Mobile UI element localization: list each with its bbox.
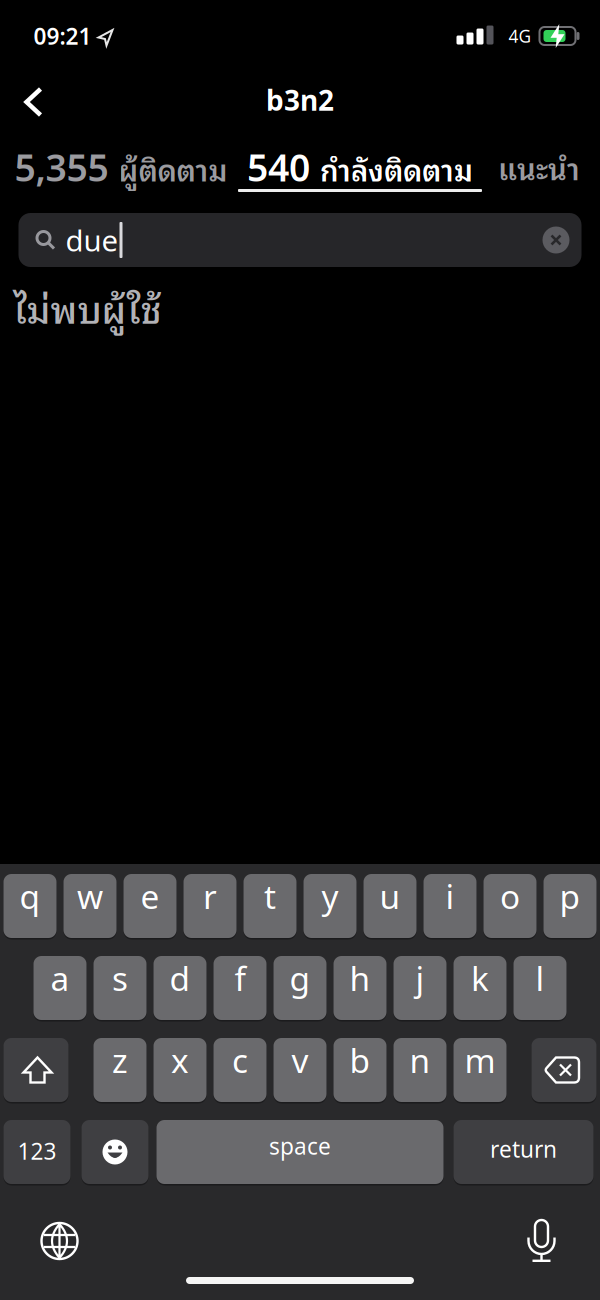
staticText: 09:21 (33, 21, 91, 51)
button[interactable]: Shift (3, 1038, 68, 1102)
button[interactable]: q (3, 874, 56, 938)
button[interactable]: Emoji (81, 1120, 148, 1184)
button[interactable]: e (123, 874, 176, 938)
button[interactable]: 5,355 ผู้ติดตาม (0, 138, 242, 192)
staticText: space (269, 1131, 331, 1161)
button[interactable]: c (213, 1038, 266, 1102)
button[interactable]: s (93, 956, 146, 1020)
button[interactable]: g (273, 956, 326, 1020)
button[interactable]: o (483, 874, 536, 938)
button[interactable]: แนะนำ (478, 138, 600, 192)
button[interactable]: Back (0, 83, 63, 113)
staticText: r (203, 874, 217, 918)
button[interactable]: r (183, 874, 236, 938)
button[interactable]: j (393, 956, 446, 1020)
button[interactable]: space (156, 1120, 443, 1184)
staticText: l (535, 956, 544, 1000)
staticText: i (445, 874, 454, 918)
button[interactable]: a (33, 956, 86, 1020)
staticText: f (234, 956, 245, 1000)
button[interactable]: x (153, 1038, 206, 1102)
staticText: 123 (17, 1136, 56, 1166)
staticText: 4G (508, 24, 531, 47)
button[interactable]: w (63, 874, 116, 938)
button[interactable]: p (543, 874, 596, 938)
staticText: return (490, 1134, 557, 1164)
staticText: h (349, 956, 370, 1000)
staticText: z (112, 1038, 128, 1082)
button[interactable]: h (333, 956, 386, 1020)
button[interactable]: v (273, 1038, 326, 1102)
button[interactable]: Dictate (527, 1220, 600, 1262)
button[interactable]: b (333, 1038, 386, 1102)
staticText: d (169, 956, 190, 1000)
staticText: o (500, 874, 520, 918)
button[interactable]: u (363, 874, 416, 938)
button[interactable]: 540 กำลังติดตาม (242, 138, 478, 192)
staticText: x (171, 1038, 189, 1082)
button[interactable]: Clear search (542, 226, 581, 253)
button[interactable]: i (423, 874, 476, 938)
staticText: k (471, 956, 489, 1000)
staticText: due (65, 220, 118, 259)
staticText: v (291, 1038, 308, 1082)
staticText: q (19, 874, 40, 918)
staticText: 540 กำลังติดตาม (247, 142, 473, 192)
staticText: s (112, 956, 128, 1000)
button[interactable]: k (453, 956, 506, 1020)
button[interactable]: z (93, 1038, 146, 1102)
button[interactable]: Numbers (3, 1120, 70, 1184)
staticText: t (264, 874, 276, 918)
staticText: g (289, 956, 310, 1000)
staticText: ไม่พบผู้ใช้ (13, 277, 161, 337)
button[interactable]: return (453, 1120, 593, 1184)
button[interactable]: d (153, 956, 206, 1020)
staticText: b3n2 (266, 81, 334, 119)
staticText: แนะนำ (498, 143, 580, 190)
button[interactable]: Delete (531, 1038, 596, 1102)
staticText: w (77, 874, 103, 918)
button[interactable]: m (453, 1038, 506, 1102)
button[interactable]: l (513, 956, 566, 1020)
staticText: y (321, 874, 338, 918)
staticText: b (349, 1038, 370, 1082)
staticText: u (379, 874, 400, 918)
staticText: 5,355 ผู้ติดตาม (14, 142, 227, 192)
staticText: p (559, 874, 580, 918)
button[interactable]: n (393, 1038, 446, 1102)
button[interactable]: t (243, 874, 296, 938)
button[interactable]: y (303, 874, 356, 938)
staticText: e (140, 874, 159, 918)
staticText: a (50, 956, 69, 1000)
staticText: m (464, 1038, 495, 1082)
button[interactable]: Next keyboard (0, 1223, 77, 1259)
button[interactable]: f (213, 956, 266, 1020)
staticText: c (232, 1038, 248, 1082)
staticText: n (409, 1038, 430, 1082)
staticText: j (415, 956, 424, 1000)
